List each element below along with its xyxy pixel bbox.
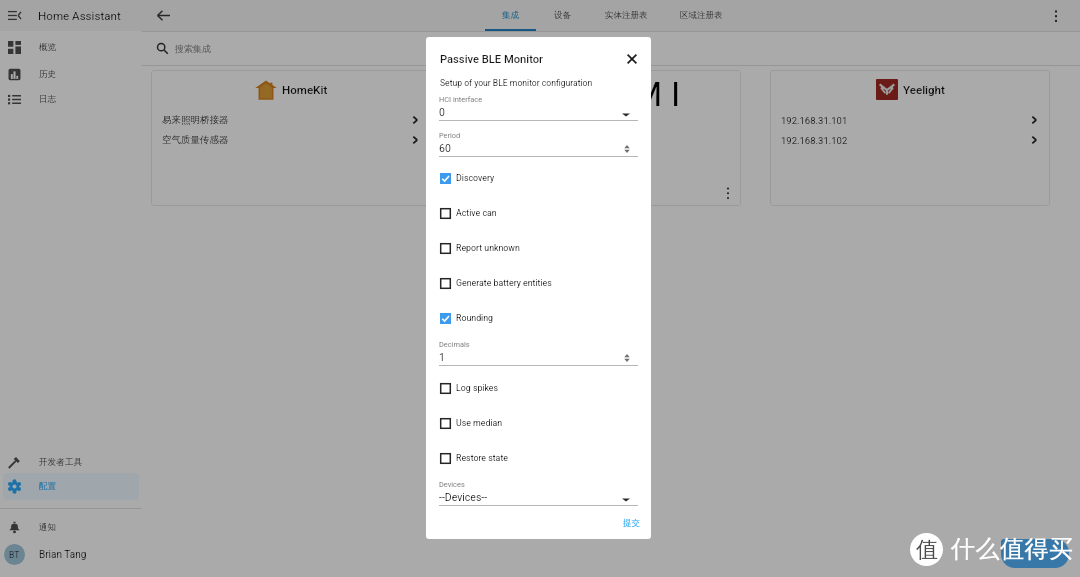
button[interactable]: 空气质量传感器 xyxy=(151,130,431,150)
staticText: Home Assistant xyxy=(38,9,121,23)
staticText: Passive BLE Monitor xyxy=(440,53,544,66)
button[interactable]: 开发者工具 xyxy=(3,449,139,476)
button[interactable]: 192.168.31.101 xyxy=(770,110,1050,130)
staticText: HCI interface xyxy=(439,95,483,104)
staticText: Decimals xyxy=(439,340,470,349)
button[interactable]: Devices xyxy=(426,480,651,510)
staticText: Report unknown xyxy=(456,243,520,253)
button[interactable]: XIAOMI xyxy=(461,70,741,206)
staticText: 易来照明桥接器 xyxy=(162,114,229,126)
button[interactable]: HomeKit xyxy=(151,70,431,206)
button[interactable]: 配置 xyxy=(3,473,139,500)
staticText: 配置 xyxy=(39,481,57,492)
button[interactable]: Decimals xyxy=(426,340,651,370)
button[interactable]: 易来照明桥接器 xyxy=(151,110,431,130)
button[interactable]: HCI interface xyxy=(426,95,651,125)
staticText: Active can xyxy=(456,208,497,218)
button[interactable]: 区域注册表 xyxy=(669,0,733,31)
button[interactable]: More options xyxy=(1036,0,1076,31)
button[interactable]: Back xyxy=(144,0,182,31)
staticText: HomeKit xyxy=(282,83,328,97)
staticText: Generate battery entities xyxy=(456,278,552,288)
button[interactable]: Discovery xyxy=(426,161,651,195)
staticText: Use median xyxy=(456,418,503,428)
button[interactable]: 通知 xyxy=(3,514,139,541)
button[interactable]: Rounding xyxy=(426,301,651,335)
staticText: 历史 xyxy=(39,69,57,80)
staticText: 值 xyxy=(916,536,938,564)
staticText: Yeelight xyxy=(903,83,945,97)
staticText: 通知 xyxy=(39,522,57,533)
staticText: --Devices-- xyxy=(439,491,488,503)
staticText: 192.168.31.101 xyxy=(781,115,848,126)
staticText: 日志 xyxy=(39,94,57,105)
button[interactable]: 192.168.31.102 xyxy=(770,130,1050,150)
button[interactable]: BT xyxy=(0,541,142,568)
button[interactable]: Yeelight xyxy=(770,70,1050,206)
button[interactable]: 概览 xyxy=(3,34,139,61)
button[interactable]: Log spikes xyxy=(426,371,651,405)
staticText: 1 xyxy=(439,351,445,363)
staticText: 0 xyxy=(439,106,445,118)
staticText: 提交 xyxy=(623,518,640,529)
staticText: Discovery xyxy=(456,173,495,183)
staticText: 搜索集成 xyxy=(175,43,211,54)
staticText: Devices xyxy=(439,480,465,489)
button[interactable]: 搜索集成 xyxy=(142,32,1080,65)
button[interactable]: 历史 xyxy=(3,61,139,88)
button[interactable]: Restore state xyxy=(426,441,651,475)
button[interactable]: Generate battery entities xyxy=(426,266,651,300)
staticText: Log spikes xyxy=(456,383,499,393)
button[interactable]: Use median xyxy=(426,406,651,440)
staticText: Setup of your BLE monitor configuration xyxy=(440,78,593,88)
staticText: 区域注册表 xyxy=(680,10,723,21)
button[interactable]: 日志 xyxy=(3,86,139,113)
staticText: 概览 xyxy=(39,42,57,53)
staticText: 设备 xyxy=(554,10,571,21)
staticText: XIAOMI xyxy=(521,74,689,110)
button[interactable]: 集成 xyxy=(478,0,542,31)
staticText: 开发者工具 xyxy=(39,457,82,468)
button[interactable]: 实体注册表 xyxy=(594,0,658,31)
button[interactable]: Card options xyxy=(715,180,741,206)
staticText: Period xyxy=(439,131,461,140)
button[interactable]: Toggle sidebar xyxy=(0,0,142,31)
button[interactable]: 设备 xyxy=(530,0,594,31)
staticText: 60 xyxy=(439,142,451,154)
button[interactable]: 提交 xyxy=(619,515,644,532)
staticText: 实体注册表 xyxy=(605,10,648,21)
button[interactable]: Close xyxy=(622,49,642,69)
staticText: Restore state xyxy=(456,453,508,463)
staticText: 空气质量传感器 xyxy=(162,134,229,146)
staticText: 什么值得买 xyxy=(951,534,1074,564)
button[interactable]: Report unknown xyxy=(426,231,651,265)
staticText: Rounding xyxy=(456,313,494,323)
button[interactable]: Period xyxy=(426,131,651,161)
staticText: BT xyxy=(9,550,20,560)
other: Toggle sidebar xyxy=(0,0,29,31)
staticText: Brian Tang xyxy=(39,549,87,561)
staticText: 集成 xyxy=(502,10,519,21)
staticText: 192.168.31.102 xyxy=(781,135,848,146)
button[interactable]: Active can xyxy=(426,196,651,230)
